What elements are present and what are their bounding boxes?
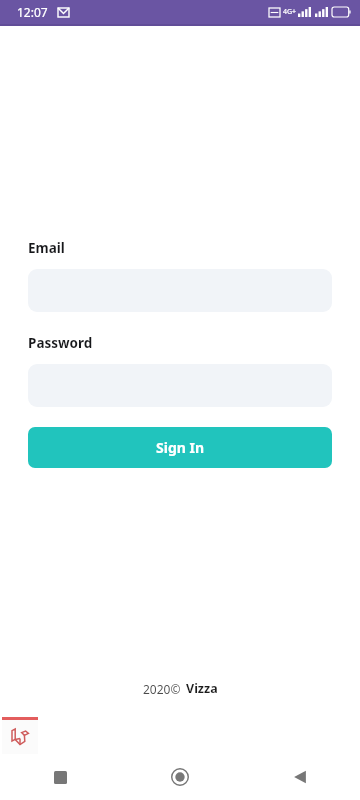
button[interactable]: Sign In — [28, 427, 332, 468]
staticText: 2020© — [143, 681, 181, 697]
staticText: Vizza — [186, 680, 218, 697]
button[interactable]: Recent apps — [0, 754, 120, 800]
staticText: Sign In — [156, 438, 205, 457]
button[interactable]: Laravel debugbar — [2, 717, 38, 754]
button[interactable]: Back — [240, 754, 360, 800]
staticText: Email — [28, 239, 65, 257]
button[interactable]: Home — [120, 754, 240, 800]
staticText: 4G+ — [283, 7, 297, 17]
staticText: Password — [28, 334, 93, 352]
staticText: 12:07 — [17, 4, 48, 20]
